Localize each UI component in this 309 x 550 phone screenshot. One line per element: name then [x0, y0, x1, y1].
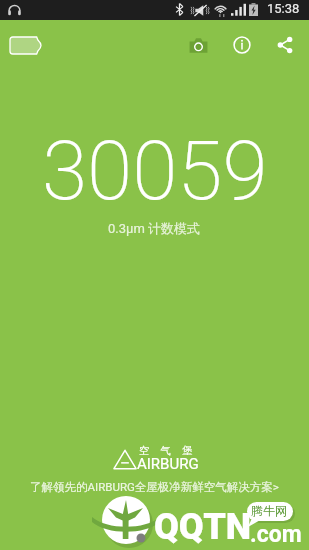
staticText: 15:38 — [267, 1, 300, 16]
staticText: 0.3μm 计数模式 — [108, 220, 201, 236]
staticText: 了解领先的AIRBURG全屋极净新鲜空气解决方案> — [30, 480, 279, 494]
button[interactable]: AIRBURG logo — [112, 443, 198, 473]
button[interactable]: 了解领先的AIRBURG全屋极净新鲜空气解决方案> — [0, 480, 309, 494]
staticText: .com — [250, 521, 302, 548]
staticText: AIRBURG — [137, 455, 199, 473]
button[interactable]: Share — [264, 21, 305, 69]
button[interactable]: Camera — [176, 21, 220, 69]
staticText: 空气堡 — [139, 444, 204, 457]
button[interactable]: Battery level — [3, 25, 47, 65]
staticText: QQTN — [154, 506, 252, 548]
button[interactable]: Info — [220, 21, 264, 69]
staticText: 30059 — [42, 123, 268, 219]
staticText: 腾牛网 — [251, 503, 287, 518]
